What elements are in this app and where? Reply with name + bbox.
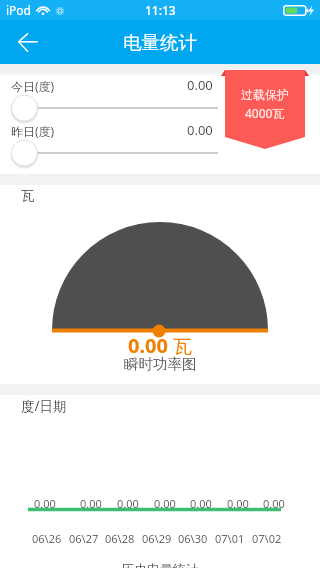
staticText: 0.00 <box>117 496 139 511</box>
button[interactable]: 过载保护 <box>221 68 313 152</box>
staticText: 07\01 <box>215 531 245 546</box>
staticText: 过载保护 <box>241 87 289 102</box>
staticText: 0.00 <box>154 496 176 511</box>
staticText: iPod <box>6 2 31 18</box>
staticText: 4000瓦 <box>245 105 285 121</box>
staticText: 0.00 <box>227 496 249 511</box>
staticText: 电量统计 <box>123 31 197 54</box>
staticText: 瞬时功率图 <box>124 355 197 373</box>
button[interactable]: 今日(度) <box>0 94 320 122</box>
staticText: 今日(度) <box>11 78 55 94</box>
staticText: 0.00 <box>187 121 213 139</box>
staticText: 06\27 <box>69 531 99 546</box>
staticText: 0.00 <box>34 496 56 511</box>
button[interactable]: 昨日(度) <box>0 139 320 167</box>
staticText: 度/日期 <box>21 397 67 415</box>
staticText: 历史电量统计 <box>121 561 199 568</box>
staticText: 0.00 <box>187 76 213 94</box>
staticText: 瓦 <box>173 335 192 359</box>
staticText: 06\26 <box>32 531 62 546</box>
staticText: 0.00 <box>263 496 285 511</box>
button[interactable]: Back <box>0 20 46 64</box>
staticText: 0.00 <box>80 496 102 511</box>
staticText: 06\28 <box>105 531 135 546</box>
staticText: 06\29 <box>142 531 172 546</box>
staticText: 0.00 <box>128 332 168 359</box>
staticText: 06\30 <box>178 531 208 546</box>
staticText: 0.00 <box>190 496 212 511</box>
staticText: 昨日(度) <box>11 123 55 139</box>
staticText: 07\02 <box>252 531 282 546</box>
staticText: 瓦 <box>21 187 35 204</box>
staticText: 11:13 <box>145 2 176 18</box>
